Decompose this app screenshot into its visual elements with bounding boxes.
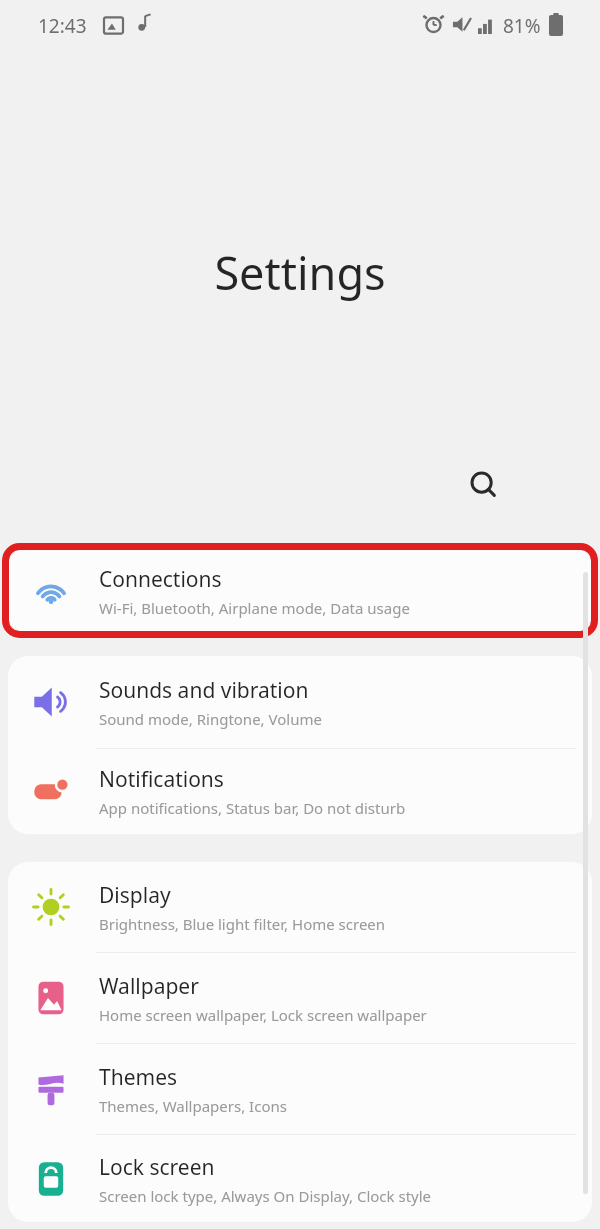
staticText: Screen lock type, Always On Display, Clo… <box>99 1186 432 1206</box>
staticText: Sounds and vibration <box>99 676 309 705</box>
staticText: App notifications, Status bar, Do not di… <box>99 798 406 818</box>
button[interactable]: Lock screen <box>8 1135 592 1222</box>
staticText: Settings <box>0 242 600 303</box>
staticText: Notifications <box>99 765 224 794</box>
button[interactable]: Notifications <box>8 749 592 834</box>
staticText: Home screen wallpaper, Lock screen wallp… <box>99 1005 427 1025</box>
staticText: Connections <box>99 565 222 594</box>
button[interactable]: Themes <box>8 1044 592 1134</box>
staticText: Lock screen <box>99 1153 215 1182</box>
staticText: Sound mode, Ringtone, Volume <box>99 709 322 729</box>
button[interactable]: Connections <box>8 549 592 632</box>
staticText: Display <box>99 881 171 910</box>
staticText: Wi-Fi, Bluetooth, Airplane mode, Data us… <box>99 598 410 618</box>
staticText: 81% <box>503 13 541 39</box>
staticText: Themes <box>99 1063 178 1092</box>
staticText: Wallpaper <box>99 972 199 1001</box>
staticText: Themes, Wallpapers, Icons <box>99 1096 287 1116</box>
staticText: 12:43 <box>38 13 87 39</box>
staticText: Brightness, Blue light filter, Home scre… <box>99 914 386 934</box>
button[interactable]: Wallpaper <box>8 953 592 1043</box>
button[interactable]: Display <box>8 862 592 952</box>
button[interactable]: Search <box>458 459 510 511</box>
button[interactable]: Sounds and vibration <box>8 656 592 748</box>
